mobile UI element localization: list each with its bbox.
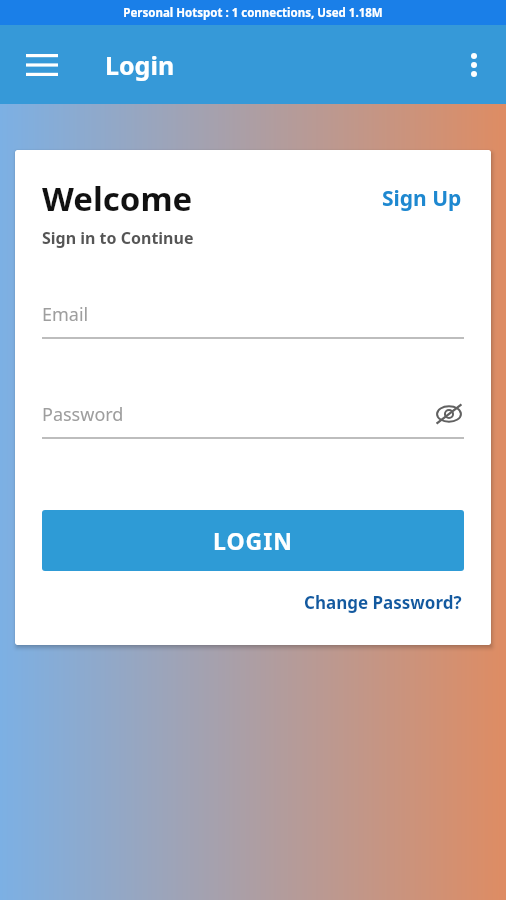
staticText: Welcome [42,176,193,221]
staticText: Email [42,302,89,327]
button[interactable]: Change Password? [302,588,464,617]
button[interactable]: Show password [434,401,464,427]
button[interactable]: More options [450,41,498,89]
button[interactable]: LOGIN [42,510,464,571]
staticText: Sign in to Continue [42,227,194,249]
staticText: Sign Up [382,184,462,213]
staticText: LOGIN [213,525,293,556]
staticText: Login [105,48,175,82]
button[interactable]: Email [42,301,464,339]
staticText: Change Password? [304,591,462,614]
button[interactable]: Open navigation menu [14,37,70,93]
button[interactable]: Password [42,401,464,439]
button[interactable]: Sign Up [380,182,464,215]
staticText: Personal Hotspot : 1 connections, Used 1… [123,5,383,21]
staticText: Password [42,402,124,427]
